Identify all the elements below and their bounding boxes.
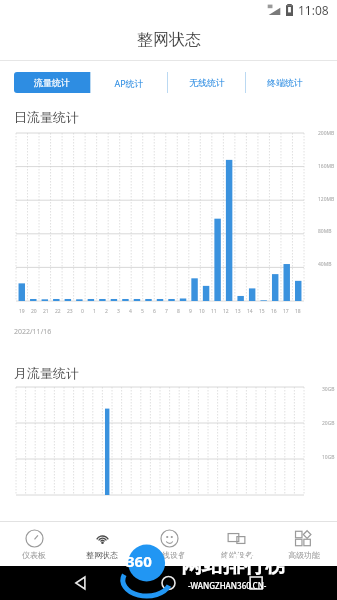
staticText: 日流量统计	[14, 109, 79, 125]
staticText: 7	[165, 308, 168, 315]
staticText: 14	[247, 308, 253, 315]
staticText: 20	[31, 308, 37, 315]
staticText: 15	[259, 308, 265, 315]
staticText: 1	[93, 308, 96, 315]
button[interactable]: 整网状态	[68, 522, 136, 566]
staticText: 200MB	[318, 130, 335, 137]
staticText: 2	[105, 308, 108, 315]
staticText: 流量统计	[34, 77, 70, 88]
staticText: 5	[141, 308, 144, 315]
staticText: 80MB	[318, 228, 332, 235]
staticText: 仪表板	[22, 550, 46, 560]
staticText: 整网状态	[86, 550, 118, 560]
staticText: 网站排行榜	[181, 552, 286, 578]
staticText: 4	[129, 308, 132, 315]
staticText: 0	[81, 308, 84, 315]
staticText: 23	[67, 308, 73, 315]
staticText: -WANGZHAN360.CN-	[188, 580, 267, 591]
other: 终端设备	[227, 529, 246, 548]
staticText: 3	[117, 308, 120, 315]
staticText: 2022/11/16	[14, 327, 52, 337]
staticText: AP统计	[114, 77, 144, 89]
staticText: 11	[211, 308, 217, 315]
staticText: 8	[177, 308, 180, 315]
staticText: 40MB	[318, 261, 332, 268]
staticText: 120MB	[318, 196, 335, 203]
button[interactable]: 有线设备	[136, 522, 203, 566]
button[interactable]: 高级功能	[270, 522, 337, 566]
staticText: 月流量统计	[14, 365, 79, 381]
staticText: 无线统计	[189, 77, 225, 88]
other: 有线设备	[160, 529, 179, 548]
staticText: 有线设备	[154, 550, 186, 560]
staticText: 17	[283, 308, 289, 315]
staticText: 13	[235, 308, 241, 315]
button[interactable]: AP统计	[91, 72, 167, 93]
other: 高级功能	[294, 529, 313, 548]
staticText: 9	[189, 308, 192, 315]
staticText: 整网状态	[137, 30, 201, 50]
staticText: 30GB	[322, 386, 335, 393]
button[interactable]: 流量统计	[14, 72, 90, 93]
button[interactable]: 终端统计	[246, 72, 323, 93]
staticText: 12	[223, 308, 229, 315]
button[interactable]: 仪表板	[0, 522, 68, 566]
button[interactable]: 无线统计	[168, 72, 245, 93]
staticText: 360	[126, 551, 152, 571]
staticText: 19	[19, 308, 25, 315]
button[interactable]: 终端设备	[203, 522, 270, 566]
staticText: 160MB	[318, 163, 335, 170]
staticText: 18	[295, 308, 301, 315]
staticText: 终端统计	[267, 77, 303, 88]
staticText: 22	[55, 308, 61, 315]
staticText: 16	[271, 308, 277, 315]
other: 仪表板	[25, 529, 44, 548]
staticText: 21	[43, 308, 49, 315]
staticText: 20GB	[322, 420, 335, 427]
other: 整网状态	[93, 529, 112, 548]
staticText: 高级功能	[288, 550, 320, 560]
staticText: 6	[153, 308, 156, 315]
staticText: 终端设备	[221, 550, 253, 560]
staticText: 11:08	[298, 2, 329, 18]
staticText: 10GB	[322, 454, 335, 461]
staticText: 10	[199, 308, 205, 315]
